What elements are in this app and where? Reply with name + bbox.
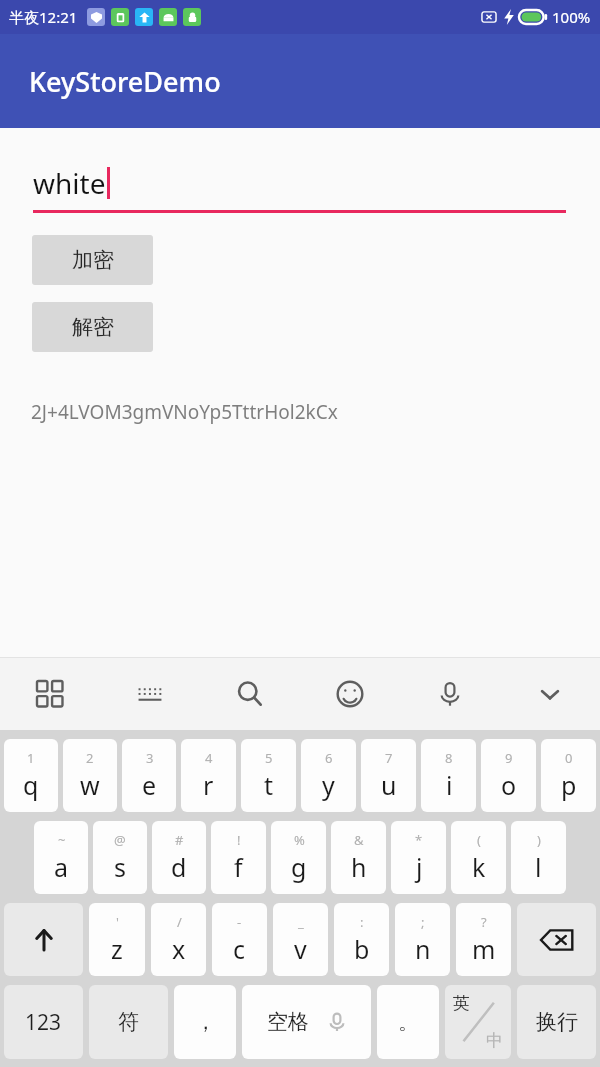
staticText: q	[23, 768, 39, 802]
staticText: 符	[118, 1009, 139, 1035]
staticText: d	[171, 850, 187, 884]
button[interactable]: %	[271, 821, 326, 894]
button[interactable]: 4	[181, 739, 236, 812]
staticText: f	[234, 850, 243, 884]
button[interactable]: 0	[541, 739, 596, 812]
staticText: KeyStoreDemo	[29, 63, 221, 100]
button[interactable]: 加密	[32, 235, 153, 285]
button[interactable]: 空格	[242, 985, 371, 1059]
staticText: 英	[453, 993, 470, 1014]
button[interactable]: Search	[200, 658, 300, 730]
staticText: c	[233, 932, 246, 966]
button[interactable]: 1	[4, 739, 58, 812]
staticText: /	[177, 913, 182, 931]
button[interactable]: 。	[377, 985, 439, 1059]
button[interactable]: Backspace	[517, 903, 596, 976]
button[interactable]: @	[93, 821, 147, 894]
staticText: 5	[265, 749, 273, 767]
button[interactable]: '	[89, 903, 145, 976]
staticText: ~	[58, 831, 66, 849]
button[interactable]: Apps	[0, 658, 100, 730]
button[interactable]: 6	[301, 739, 356, 812]
staticText: ;	[421, 913, 425, 931]
staticText: k	[472, 850, 486, 884]
staticText: _	[298, 913, 304, 931]
button[interactable]: Keyboard layout	[100, 658, 200, 730]
staticText: 3	[146, 749, 154, 767]
staticText: )	[537, 831, 541, 849]
staticText: -	[237, 913, 242, 931]
button[interactable]: _	[273, 903, 328, 976]
staticText: ?	[481, 913, 487, 931]
button[interactable]: white	[33, 164, 566, 213]
staticText: '	[116, 913, 119, 931]
button[interactable]: 8	[421, 739, 476, 812]
staticText: 中	[486, 1030, 503, 1051]
button[interactable]: 2	[63, 739, 117, 812]
staticText: white	[33, 164, 106, 202]
staticText: 加密	[72, 247, 114, 273]
button[interactable]: *	[391, 821, 446, 894]
staticText: 换行	[536, 1009, 578, 1035]
button[interactable]: 换行	[517, 985, 596, 1059]
staticText: @	[114, 831, 126, 849]
staticText: :	[360, 913, 364, 931]
staticText: 6	[325, 749, 333, 767]
staticText: l	[535, 850, 542, 884]
button[interactable]: ?	[456, 903, 511, 976]
staticText: i	[446, 768, 453, 802]
button[interactable]: :	[334, 903, 389, 976]
staticText: z	[111, 932, 123, 966]
button[interactable]: )	[511, 821, 566, 894]
button[interactable]: 5	[241, 739, 296, 812]
button[interactable]: -	[212, 903, 267, 976]
button[interactable]: Hide keyboard	[500, 658, 600, 730]
staticText: !	[237, 831, 241, 849]
staticText: 1	[27, 749, 35, 767]
button[interactable]: 9	[481, 739, 536, 812]
staticText: w	[80, 768, 100, 802]
staticText: b	[354, 932, 370, 966]
staticText: y	[322, 768, 335, 802]
button[interactable]: !	[211, 821, 266, 894]
staticText: ，	[195, 1009, 216, 1035]
staticText: (	[477, 831, 481, 849]
button[interactable]: #	[152, 821, 206, 894]
button[interactable]: 7	[361, 739, 416, 812]
button[interactable]: 符	[89, 985, 168, 1059]
staticText: 0	[565, 749, 573, 767]
staticText: v	[294, 932, 307, 966]
staticText: u	[381, 768, 397, 802]
staticText: g	[291, 850, 307, 884]
staticText: 。	[398, 1009, 419, 1035]
staticText: x	[172, 932, 186, 966]
button[interactable]: ;	[395, 903, 450, 976]
staticText: a	[54, 850, 69, 884]
staticText: 8	[445, 749, 453, 767]
button[interactable]: 解密	[32, 302, 153, 352]
button[interactable]: 123	[4, 985, 83, 1059]
button[interactable]: &	[331, 821, 386, 894]
staticText: &	[354, 831, 364, 849]
staticText: 100%	[552, 7, 591, 27]
staticText: *	[415, 831, 423, 849]
staticText: o	[501, 768, 517, 802]
button[interactable]: (	[451, 821, 506, 894]
staticText: #	[175, 831, 184, 849]
button[interactable]: /	[151, 903, 206, 976]
staticText: m	[472, 932, 496, 966]
button[interactable]: Voice input	[400, 658, 500, 730]
button[interactable]: ~	[34, 821, 88, 894]
staticText: %	[294, 831, 305, 849]
staticText: p	[561, 768, 577, 802]
staticText: 7	[385, 749, 393, 767]
button[interactable]: ，	[174, 985, 236, 1059]
staticText: 空格	[267, 1009, 309, 1035]
button[interactable]: 3	[122, 739, 176, 812]
button[interactable]: Switch language	[445, 985, 511, 1059]
staticText: n	[415, 932, 431, 966]
staticText: 9	[505, 749, 513, 767]
button[interactable]: Shift	[4, 903, 83, 976]
button[interactable]: Emoji	[300, 658, 400, 730]
staticText: 2	[86, 749, 94, 767]
